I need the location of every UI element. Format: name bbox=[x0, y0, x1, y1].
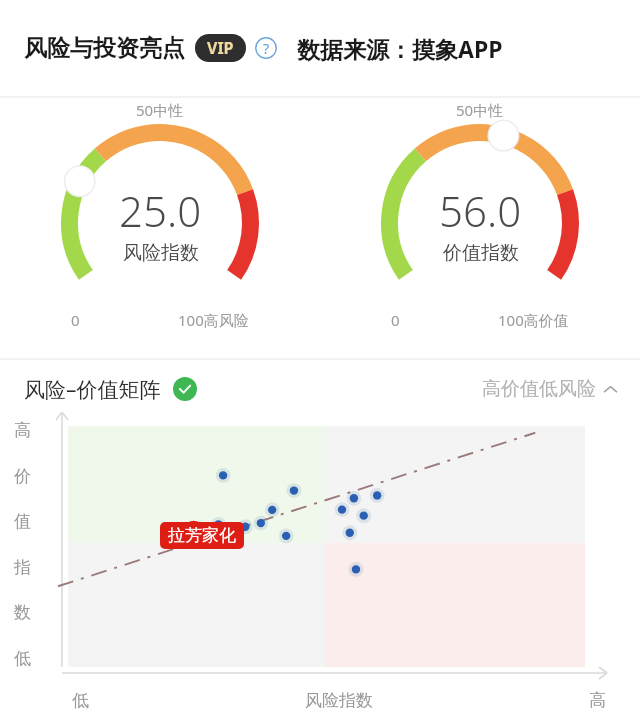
staticText: 风险指数 bbox=[305, 690, 373, 711]
staticText: 低 bbox=[14, 648, 31, 669]
staticText: 0 bbox=[391, 310, 400, 330]
staticText: 风险–价值矩阵 bbox=[24, 375, 161, 404]
staticText: 100高价值 bbox=[498, 310, 569, 330]
staticText: 100高风险 bbox=[178, 310, 249, 330]
staticText: 拉芳家化 bbox=[168, 525, 236, 546]
staticText: 低 bbox=[72, 690, 89, 711]
staticText: 价值指数 bbox=[443, 241, 519, 265]
staticText: 高 bbox=[14, 420, 31, 441]
staticText: 指 bbox=[14, 557, 31, 578]
staticText: 价 bbox=[14, 466, 31, 487]
staticText: 高 bbox=[589, 690, 606, 711]
staticText: 56.0 bbox=[439, 182, 522, 239]
staticText: 风险指数 bbox=[123, 241, 199, 265]
button[interactable]: VIP bbox=[195, 34, 246, 62]
staticText: VIP bbox=[207, 37, 234, 59]
staticText: 高价值低风险 bbox=[482, 377, 596, 401]
staticText: 风险与投资亮点 bbox=[24, 34, 185, 63]
staticText: 值 bbox=[14, 511, 31, 532]
button[interactable]: Help bbox=[255, 37, 277, 59]
staticText: 0 bbox=[71, 310, 80, 330]
button[interactable]: 拉芳家化 bbox=[160, 522, 244, 549]
staticText: 数据来源：摸象APP bbox=[297, 33, 503, 64]
staticText: 25.0 bbox=[119, 182, 202, 239]
staticText: 数 bbox=[14, 602, 31, 623]
button[interactable]: 高价值低风险 bbox=[482, 377, 618, 401]
button[interactable]: Verified bbox=[173, 377, 197, 401]
staticText: ? bbox=[263, 39, 270, 58]
staticText: 50中性 bbox=[456, 100, 504, 120]
staticText: 50中性 bbox=[136, 100, 184, 120]
